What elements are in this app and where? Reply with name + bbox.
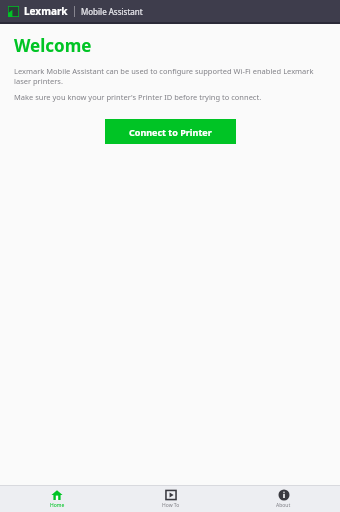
staticText: Connect to Printer [129,126,212,138]
staticText: How To [162,502,180,509]
staticText: About [276,502,291,509]
staticText: Lexmark Mobile Assistant can be used to … [14,66,330,86]
staticText: Welcome [14,34,92,57]
button[interactable]: Connect to Printer [105,119,236,144]
button[interactable]: Home [0,486,114,512]
button[interactable]: How To [114,486,227,512]
staticText: Make sure you know your printer's Printe… [14,92,262,102]
staticText: Lexmark [24,4,68,18]
staticText: Home [50,502,65,509]
staticText: Mobile Assistant [81,6,143,17]
button[interactable]: About [227,486,340,512]
